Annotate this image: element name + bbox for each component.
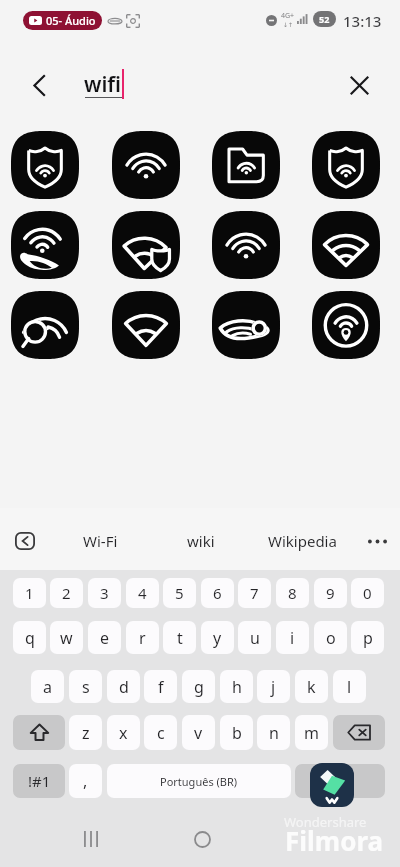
staticText: Português (BR): [160, 774, 238, 789]
button[interactable]: k: [295, 670, 328, 703]
staticText: ,: [83, 770, 88, 792]
staticText: 52: [319, 13, 330, 25]
button[interactable]: Wi-Fi icon: [312, 211, 380, 279]
button[interactable]: w: [50, 621, 83, 654]
button[interactable]: r: [126, 621, 159, 654]
button[interactable]: 9: [314, 578, 347, 608]
button[interactable]: v: [182, 715, 215, 750]
button[interactable]: ,: [69, 764, 102, 798]
staticText: u: [250, 627, 260, 649]
button[interactable]: y: [201, 621, 234, 654]
button[interactable]: z: [69, 715, 102, 750]
staticText: m: [304, 722, 319, 744]
button[interactable]: wiki: [155, 527, 247, 555]
staticText: s: [82, 676, 90, 698]
staticText: z: [82, 722, 90, 744]
button[interactable]: e: [88, 621, 121, 654]
staticText: wiki: [187, 531, 215, 551]
button[interactable]: b: [220, 715, 253, 750]
button[interactable]: 5: [163, 578, 196, 608]
staticText: p: [363, 627, 373, 649]
button[interactable]: g: [182, 670, 215, 703]
button[interactable]: Wi-Fi icon: [212, 211, 280, 279]
staticText: Wi-Fi: [83, 531, 118, 551]
staticText: x: [119, 722, 128, 744]
staticText: 6: [213, 583, 222, 603]
staticText: l: [347, 676, 352, 698]
button[interactable]: Wi-Fi: [54, 527, 146, 555]
button[interactable]: 0: [351, 578, 384, 608]
staticText: Filmora: [285, 823, 384, 858]
button[interactable]: Wi-Fi icon: [112, 131, 180, 199]
button[interactable]: 2: [50, 578, 83, 608]
button[interactable]: Wikipedia: [256, 527, 348, 555]
button[interactable]: a: [31, 670, 64, 703]
button[interactable]: Clear search: [340, 66, 378, 104]
button[interactable]: More suggestions: [362, 527, 392, 555]
button[interactable]: Wi-Fi icon: [112, 291, 180, 359]
button[interactable]: 1: [13, 578, 46, 608]
staticText: 05- Áudio: [46, 13, 96, 28]
staticText: v: [194, 722, 203, 744]
button[interactable]: l: [333, 670, 366, 703]
button[interactable]: Shift: [13, 715, 65, 750]
button[interactable]: Wi-Fi icon: [312, 291, 380, 359]
button[interactable]: Back: [20, 66, 58, 104]
button[interactable]: Recents: [66, 815, 116, 863]
button[interactable]: n: [257, 715, 290, 750]
button[interactable]: u: [238, 621, 271, 654]
button[interactable]: h: [220, 670, 253, 703]
button[interactable]: Previous suggestions: [9, 527, 40, 555]
button[interactable]: Backspace: [333, 715, 385, 750]
button[interactable]: o: [314, 621, 347, 654]
staticText: 3: [100, 583, 109, 603]
button[interactable]: m: [295, 715, 328, 750]
button[interactable]: t: [163, 621, 196, 654]
button[interactable]: Português (BR): [107, 764, 291, 798]
button[interactable]: Wi-Fi icon: [212, 131, 280, 199]
staticText: e: [100, 627, 110, 649]
staticText: 9: [326, 583, 335, 603]
button[interactable]: Wi-Fi icon: [312, 131, 380, 199]
button[interactable]: Home: [177, 815, 227, 863]
button[interactable]: i: [276, 621, 309, 654]
button[interactable]: Wi-Fi icon: [212, 291, 280, 359]
staticText: Wikipedia: [268, 531, 337, 551]
staticText: n: [269, 722, 279, 744]
staticText: i: [290, 627, 295, 649]
staticText: w: [60, 627, 73, 649]
staticText: t: [177, 627, 183, 649]
button[interactable]: Wi-Fi icon: [11, 131, 79, 199]
staticText: a: [43, 676, 52, 698]
staticText: f: [158, 676, 164, 698]
button[interactable]: j: [257, 670, 290, 703]
button[interactable]: Wi-Fi icon: [11, 291, 79, 359]
button[interactable]: q: [13, 621, 46, 654]
button[interactable]: c: [144, 715, 177, 750]
staticText: wifi: [84, 70, 122, 99]
button[interactable]: Search: [295, 764, 385, 798]
button[interactable]: 4: [126, 578, 159, 608]
button[interactable]: !#1: [13, 764, 65, 798]
button[interactable]: s: [69, 670, 102, 703]
button[interactable]: x: [107, 715, 140, 750]
staticText: c: [157, 722, 165, 744]
button[interactable]: 3: [88, 578, 121, 608]
button[interactable]: d: [107, 670, 140, 703]
button[interactable]: p: [351, 621, 384, 654]
button[interactable]: 8: [276, 578, 309, 608]
button[interactable]: Back: [288, 815, 338, 863]
staticText: j: [271, 676, 276, 698]
button[interactable]: Wi-Fi icon: [11, 211, 79, 279]
button[interactable]: Wi-Fi icon: [112, 211, 180, 279]
button[interactable]: 7: [238, 578, 271, 608]
staticText: 4: [138, 583, 147, 603]
staticText: 5: [175, 583, 184, 603]
button[interactable]: Media notification: [23, 11, 102, 30]
staticText: q: [25, 627, 35, 649]
staticText: 0: [363, 583, 372, 603]
staticText: y: [213, 627, 222, 649]
button[interactable]: 6: [201, 578, 234, 608]
staticText: b: [232, 722, 242, 744]
button[interactable]: f: [144, 670, 177, 703]
